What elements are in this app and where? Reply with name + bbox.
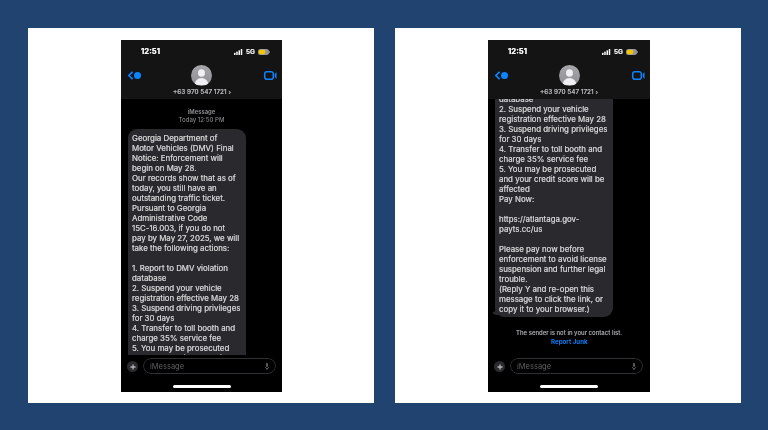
- button[interactable]: iMessage: [143, 358, 276, 374]
- button[interactable]: FaceTime video call: [631, 70, 646, 81]
- staticText: 12:51: [141, 47, 160, 56]
- button[interactable]: Contact info: [559, 65, 580, 86]
- button[interactable]: iMessage: [510, 358, 643, 374]
- staticText: Georgia Department of Motor Vehicles (DM…: [132, 133, 241, 355]
- button[interactable]: database 2. Suspend your vehicle registr…: [495, 99, 613, 317]
- staticText: Today 12:50 PM: [121, 116, 282, 123]
- button[interactable]: Contact info: [191, 65, 212, 86]
- button[interactable]: Report Junk: [488, 338, 650, 346]
- button[interactable]: Georgia Department of Motor Vehicles (DM…: [128, 129, 246, 355]
- staticText: database 2. Suspend your vehicle registr…: [499, 99, 608, 314]
- staticText: 12:51: [508, 47, 527, 56]
- staticText: iMessage: [150, 362, 185, 371]
- button[interactable]: Add attachment: [494, 361, 505, 372]
- staticText: Report Junk: [551, 338, 588, 346]
- staticText: 5G: [614, 48, 624, 56]
- button[interactable]: Add attachment: [127, 361, 138, 372]
- button[interactable]: Back: [494, 70, 509, 81]
- button[interactable]: FaceTime video call: [263, 70, 278, 81]
- staticText: iMessage: [517, 362, 552, 371]
- button[interactable]: Back: [127, 70, 142, 81]
- other: Dictate: [265, 363, 269, 370]
- staticText: The sender is not in your contact list.: [488, 329, 650, 336]
- button[interactable]: +63 970 547 1721 ›: [173, 88, 231, 96]
- staticText: iMessage: [121, 108, 282, 115]
- staticText: 5G: [246, 48, 256, 56]
- other: Dictate: [632, 363, 636, 370]
- button[interactable]: +63 970 547 1721 ›: [540, 88, 598, 96]
